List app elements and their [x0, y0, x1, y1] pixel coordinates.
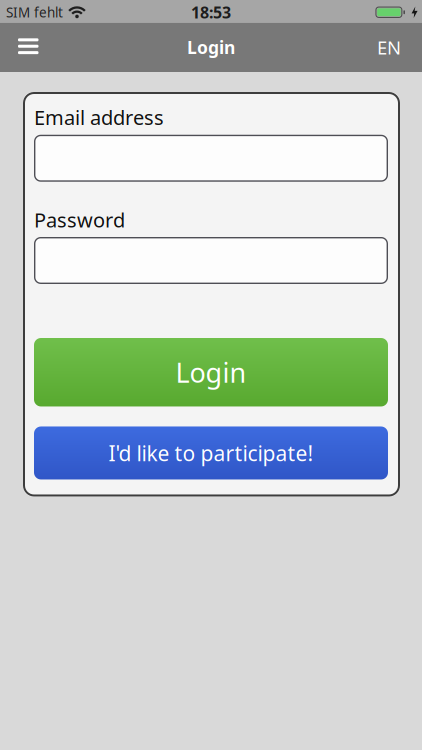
button[interactable]: Email address — [34, 135, 388, 182]
staticText: SIM fehlt — [6, 3, 63, 21]
staticText: I'd like to participate! — [108, 439, 313, 467]
button[interactable]: Login — [34, 338, 388, 406]
button[interactable]: I'd like to participate! — [34, 426, 388, 479]
staticText: Login — [187, 35, 235, 59]
staticText: Password — [34, 206, 125, 233]
staticText: EN — [377, 35, 401, 60]
button[interactable]: Password — [34, 237, 388, 284]
staticText: Email address — [34, 103, 164, 131]
staticText: 18:53 — [191, 1, 231, 23]
button[interactable]: Menu — [0, 29, 38, 65]
staticText: Login — [175, 354, 246, 391]
button[interactable]: Language — [377, 25, 422, 70]
